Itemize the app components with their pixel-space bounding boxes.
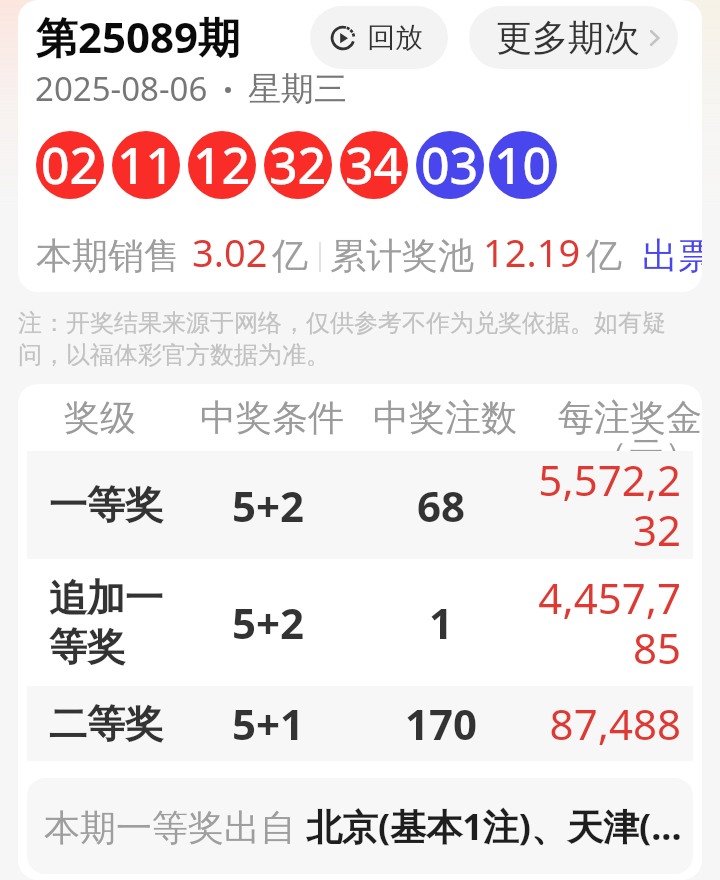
staticText: 170 [405, 695, 478, 752]
staticText: （元） [586, 433, 702, 478]
staticText: 87,488 [533, 695, 681, 752]
staticText: 中奖条件 [200, 395, 344, 440]
staticText: 累计奖池 [330, 233, 474, 278]
staticText: 本期销售 [36, 233, 180, 278]
button[interactable]: 追加一 等奖 [27, 559, 693, 686]
staticText: 5,572,2 32 [533, 451, 681, 559]
other: Replay [330, 25, 356, 51]
staticText: 北京(基本1注)、天津(... [306, 802, 682, 851]
staticText: 第25089期 [36, 8, 241, 65]
staticText: 32 [269, 131, 327, 199]
staticText: 星期三 [248, 68, 347, 110]
staticText: 追加一 等奖 [49, 574, 163, 671]
button[interactable]: Replay [310, 6, 448, 69]
staticText: 本期一等奖出自 [44, 802, 306, 851]
staticText: 10 [494, 131, 552, 199]
staticText: 亿 [586, 233, 622, 278]
staticText: 34 [345, 131, 403, 199]
button[interactable]: 更多期次 [469, 6, 678, 69]
staticText: 奖级 [64, 395, 136, 440]
staticText: 5+2 [232, 477, 305, 534]
staticText: 注：开奖结果来源于网络，仅供参考不作为兑奖依据。如有疑问，以福体彩官方数据为准。 [18, 308, 694, 370]
staticText: 每注奖金 [558, 395, 702, 440]
staticText: 3.02 [192, 226, 268, 278]
staticText: 中奖注数 [373, 395, 517, 440]
button[interactable]: 一等奖 [27, 451, 693, 559]
staticText: 一等奖 [49, 481, 163, 529]
staticText: 68 [417, 477, 466, 534]
staticText: 回放 [367, 20, 423, 55]
staticText: 1 [429, 594, 454, 651]
staticText: 二等奖 [49, 700, 163, 748]
staticText: 更多期次 [496, 15, 640, 60]
staticText: 出票 [642, 233, 702, 278]
staticText: 2025-08-06 [35, 66, 208, 111]
staticText: 12 [193, 131, 251, 199]
staticText: 4,457,7 85 [533, 569, 681, 677]
staticText: 03 [421, 131, 479, 199]
button[interactable]: 二等奖 [27, 686, 693, 761]
staticText: 11 [117, 131, 175, 199]
staticText: 02 [41, 131, 99, 199]
button[interactable]: 本期一等奖出自 [27, 778, 693, 874]
staticText: 亿 [272, 233, 308, 278]
staticText: 5+1 [232, 695, 305, 752]
staticText: 12.19 [483, 226, 581, 278]
staticText: 5+2 [232, 594, 305, 651]
